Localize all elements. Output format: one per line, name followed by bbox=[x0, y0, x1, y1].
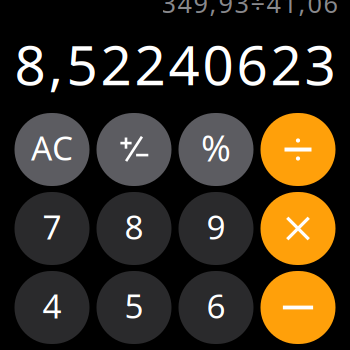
staticText: 4 bbox=[42, 283, 61, 328]
button[interactable]: 5 bbox=[96, 271, 171, 344]
button[interactable]: 9 bbox=[178, 192, 253, 265]
staticText: % bbox=[201, 124, 231, 171]
staticText: 9 bbox=[206, 204, 225, 249]
button[interactable]: Multiply bbox=[260, 192, 335, 265]
staticText: 7 bbox=[42, 204, 61, 249]
button[interactable]: 8 bbox=[96, 192, 171, 265]
staticText: 5 bbox=[124, 283, 143, 328]
button[interactable]: % bbox=[178, 113, 253, 186]
button[interactable]: Divide bbox=[260, 113, 335, 186]
button[interactable]: Minus bbox=[260, 271, 335, 344]
button[interactable]: 6 bbox=[178, 271, 253, 344]
staticText: 349,93÷41,06 bbox=[161, 0, 337, 20]
button[interactable]: 7 bbox=[14, 192, 89, 265]
staticText: 6 bbox=[206, 283, 225, 328]
staticText: 8,52240623 bbox=[14, 28, 335, 100]
staticText: 8 bbox=[124, 204, 143, 249]
button[interactable]: 4 bbox=[14, 271, 89, 344]
button[interactable]: AC bbox=[14, 113, 89, 186]
button[interactable]: Plus minus bbox=[96, 113, 171, 186]
staticText: AC bbox=[31, 125, 73, 170]
